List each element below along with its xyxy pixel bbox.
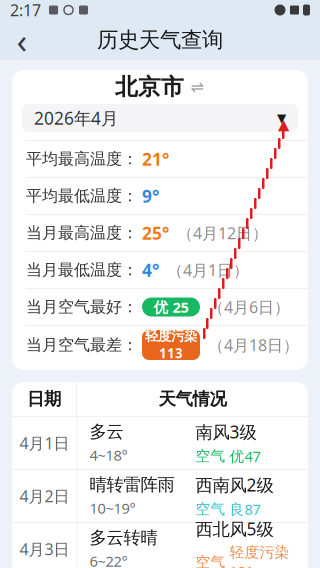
staticText: （4月12日） — [177, 222, 268, 244]
staticText: 10~19° — [89, 498, 135, 518]
staticText: 4月1日 — [19, 432, 69, 454]
button[interactable]: 2026年4月 — [22, 104, 298, 132]
staticText: ▲ — [278, 116, 289, 133]
staticText: （4月6日） — [208, 296, 290, 318]
staticText: 25° — [142, 221, 169, 244]
button[interactable]: 返回 — [0, 20, 44, 60]
staticText: 平均最高温度： — [26, 149, 138, 169]
staticText: （4月18日） — [208, 334, 299, 356]
staticText: 良87 — [229, 499, 260, 519]
staticText: 空气 — [195, 447, 229, 465]
staticText: ‹ — [16, 17, 27, 63]
staticText: 当月空气最差： — [26, 335, 138, 355]
staticText: （4月1日） — [167, 259, 249, 281]
staticText: 空气 — [195, 500, 229, 518]
staticText: 9° — [142, 184, 159, 207]
staticText: 6~22° — [89, 551, 127, 568]
button[interactable]: 切换城市 — [189, 79, 205, 95]
staticText: 当月最低温度： — [26, 260, 138, 280]
staticText: 21° — [142, 147, 169, 170]
staticText: 西北风5级 — [195, 517, 273, 540]
staticText: 轻度污染 — [145, 328, 197, 344]
staticText: 当月最高温度： — [26, 223, 138, 243]
staticText: 当月空气最好： — [26, 297, 138, 317]
staticText: 2026年4月 — [34, 106, 118, 129]
staticText: 天气情况 — [158, 388, 226, 410]
staticText: 南风3级 — [195, 420, 256, 443]
staticText: 历史天气查询 — [97, 27, 223, 53]
staticText: 轻度污染101 — [229, 543, 289, 568]
staticText: ⇌ — [190, 78, 203, 96]
staticText: 4~18° — [89, 445, 127, 465]
staticText: 4° — [142, 258, 159, 281]
staticText: 日期 — [27, 388, 61, 410]
staticText: 多云转晴 — [89, 527, 157, 548]
staticText: 空气 — [195, 553, 229, 568]
staticText: 多云 — [89, 421, 123, 442]
staticText: 4月3日 — [19, 538, 69, 560]
staticText: 优 25 — [153, 297, 188, 317]
staticText: 西南风2级 — [195, 473, 273, 496]
staticText: 113 — [159, 344, 183, 362]
staticText: 4月2日 — [19, 485, 69, 507]
staticText: 晴转雷阵雨 — [89, 474, 174, 495]
staticText: 北京市 — [115, 73, 184, 101]
staticText: 2:17 — [10, 0, 41, 21]
staticText: 平均最低温度： — [26, 186, 138, 206]
staticText: 优47 — [229, 446, 260, 466]
staticText: ▼ — [277, 111, 286, 125]
